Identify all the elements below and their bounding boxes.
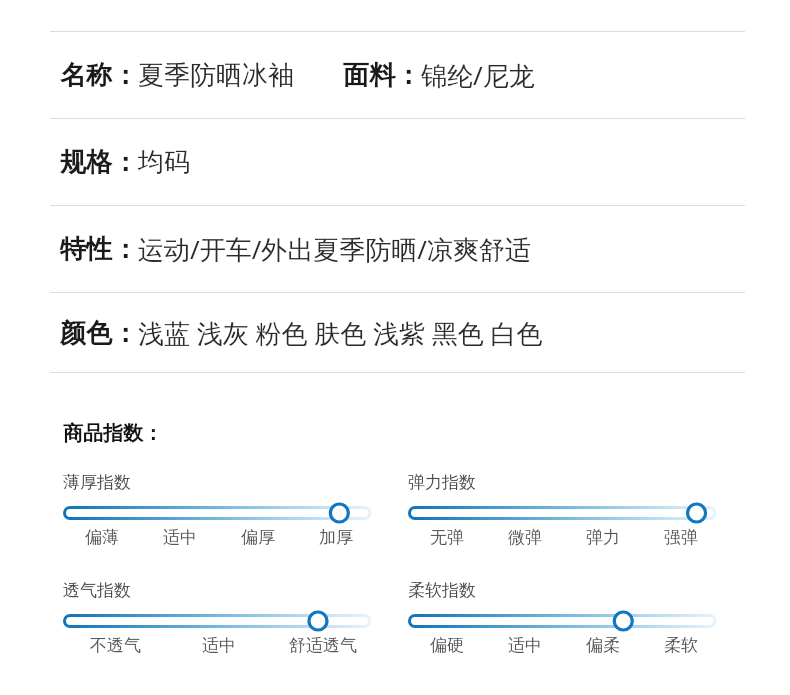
button[interactable]: 规格： — [0, 119, 790, 205]
staticText: 加厚 — [319, 527, 353, 548]
staticText: 锦纶/尼龙 — [421, 57, 535, 93]
staticText: 无弹 — [430, 527, 464, 548]
staticText: 弹力指数 — [408, 472, 476, 493]
button[interactable]: 透气指数 — [63, 580, 375, 656]
other: 柔软指数 — [408, 610, 720, 632]
staticText: 特性： — [60, 233, 138, 266]
staticText: 微弹 — [508, 527, 542, 548]
staticText: 面料： — [343, 59, 421, 92]
staticText: 名称： — [60, 59, 138, 92]
staticText: 强弹 — [664, 527, 698, 548]
staticText: 适中 — [508, 635, 542, 656]
staticText: 适中 — [163, 527, 197, 548]
staticText: 运动/开车/外出夏季防晒/凉爽舒适 — [138, 231, 532, 267]
button[interactable]: 薄厚指数 — [63, 472, 375, 548]
staticText: 偏厚 — [241, 527, 275, 548]
staticText: 适中 — [202, 635, 236, 656]
other: 透气指数 — [63, 610, 375, 632]
staticText: 薄厚指数 — [63, 472, 131, 493]
staticText: 颜色： — [60, 317, 138, 350]
button[interactable]: 名称： — [0, 32, 790, 118]
other: 弹力指数 — [408, 502, 720, 524]
button[interactable]: 弹力指数 — [408, 472, 720, 548]
staticText: 商品指数： — [63, 421, 163, 446]
staticText: 偏硬 — [430, 635, 464, 656]
staticText: 夏季防晒冰袖 — [138, 59, 294, 92]
staticText: 偏薄 — [85, 527, 119, 548]
button[interactable]: 柔软指数 — [408, 580, 720, 656]
staticText: 柔软 — [664, 635, 698, 656]
staticText: 透气指数 — [63, 580, 131, 601]
staticText: 偏柔 — [586, 635, 620, 656]
other: 薄厚指数 — [63, 502, 375, 524]
staticText: 不透气 — [90, 635, 141, 656]
staticText: 弹力 — [586, 527, 620, 548]
staticText: 柔软指数 — [408, 580, 476, 601]
staticText: 规格： — [60, 146, 138, 179]
staticText: 浅蓝 浅灰 粉色 肤色 浅紫 黑色 白色 — [138, 315, 543, 351]
button[interactable]: 特性： — [0, 206, 790, 292]
staticText: 均码 — [138, 146, 190, 179]
button[interactable]: 颜色： — [0, 293, 790, 372]
staticText: 舒适透气 — [289, 635, 357, 656]
